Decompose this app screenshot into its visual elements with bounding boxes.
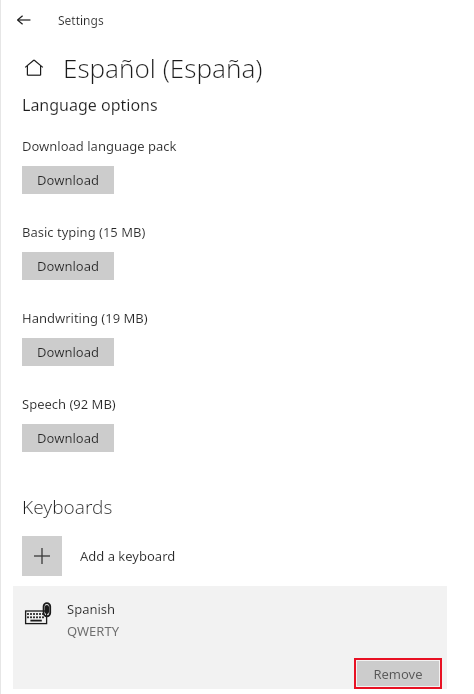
staticText: Basic typing (15 MB) [22, 223, 146, 241]
staticText: Download [37, 429, 99, 447]
staticText: Handwriting (19 MB) [22, 309, 148, 327]
button[interactable]: Download [22, 166, 114, 194]
button[interactable]: Back [10, 6, 38, 34]
staticText: Speech (92 MB) [22, 395, 116, 413]
button[interactable]: Home [22, 56, 46, 80]
button[interactable]: Download [22, 252, 114, 280]
staticText: Spanish [67, 600, 116, 618]
staticText: Keyboards [22, 494, 113, 520]
staticText: Download [37, 171, 99, 189]
staticText: Download language pack [22, 137, 177, 155]
staticText: Add a keyboard [80, 547, 176, 565]
staticText: Español (España) [63, 50, 263, 85]
button[interactable]: Add a keyboard [0, 536, 474, 576]
button[interactable]: Spanish [13, 586, 447, 689]
button[interactable]: Remove [357, 661, 439, 686]
staticText: Settings [58, 12, 104, 28]
button[interactable]: Download [22, 424, 114, 452]
staticText: Remove [373, 665, 423, 683]
button[interactable]: Download [22, 338, 114, 366]
staticText: Download [37, 257, 99, 275]
staticText: Language options [22, 94, 158, 116]
staticText: Download [37, 343, 99, 361]
staticText: QWERTY [67, 622, 120, 640]
